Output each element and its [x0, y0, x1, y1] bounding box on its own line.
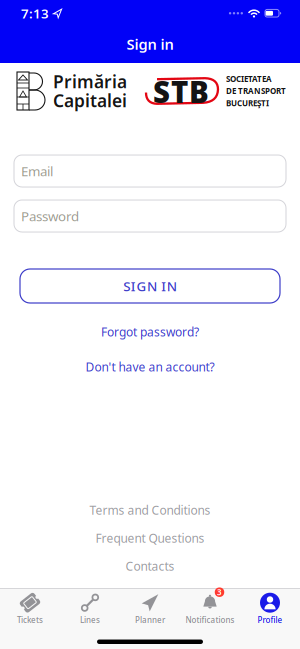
staticText: Contacts	[125, 558, 174, 574]
secureTextField[interactable]: Password	[21, 207, 286, 225]
button[interactable]: Planner	[120, 593, 180, 625]
staticText: Lines	[80, 615, 100, 625]
button[interactable]: Lines	[60, 593, 120, 625]
button[interactable]: Tickets	[0, 593, 60, 625]
staticText: Primăria	[53, 70, 127, 93]
staticText: Planner	[135, 615, 165, 625]
button[interactable]: 3	[180, 593, 240, 625]
staticText: Terms and Conditions	[89, 502, 210, 518]
staticText: BUCUREŞTI	[226, 98, 269, 108]
button[interactable]: Terms and Conditions	[89, 502, 210, 518]
staticText: Notifications	[185, 615, 234, 625]
button[interactable]: Don't have an account?	[85, 359, 214, 375]
staticText: 7:13	[21, 4, 49, 22]
staticText: Email	[21, 162, 53, 180]
staticText: Capitalei	[53, 89, 127, 112]
staticText: Sign in	[126, 34, 173, 54]
button[interactable]: Profile	[240, 593, 300, 625]
button[interactable]: Contacts	[125, 558, 174, 574]
textField[interactable]: Email	[21, 162, 286, 180]
staticText: STB	[153, 72, 209, 111]
button[interactable]: Forgot password?	[101, 324, 199, 340]
staticText: Forgot password?	[101, 324, 199, 340]
staticText: Frequent Questions	[95, 530, 204, 546]
button[interactable]: SIGN IN	[20, 269, 280, 303]
staticText: SIGN IN	[123, 277, 177, 295]
button[interactable]: Frequent Questions	[95, 530, 204, 546]
staticText: DE TRANSPORT	[226, 86, 286, 96]
staticText: SOCIETATEA	[226, 74, 272, 84]
staticText: 3	[217, 587, 222, 597]
staticText: Password	[21, 207, 79, 225]
staticText: Profile	[257, 615, 282, 625]
staticText: Don't have an account?	[85, 359, 214, 375]
staticText: Tickets	[17, 615, 43, 625]
